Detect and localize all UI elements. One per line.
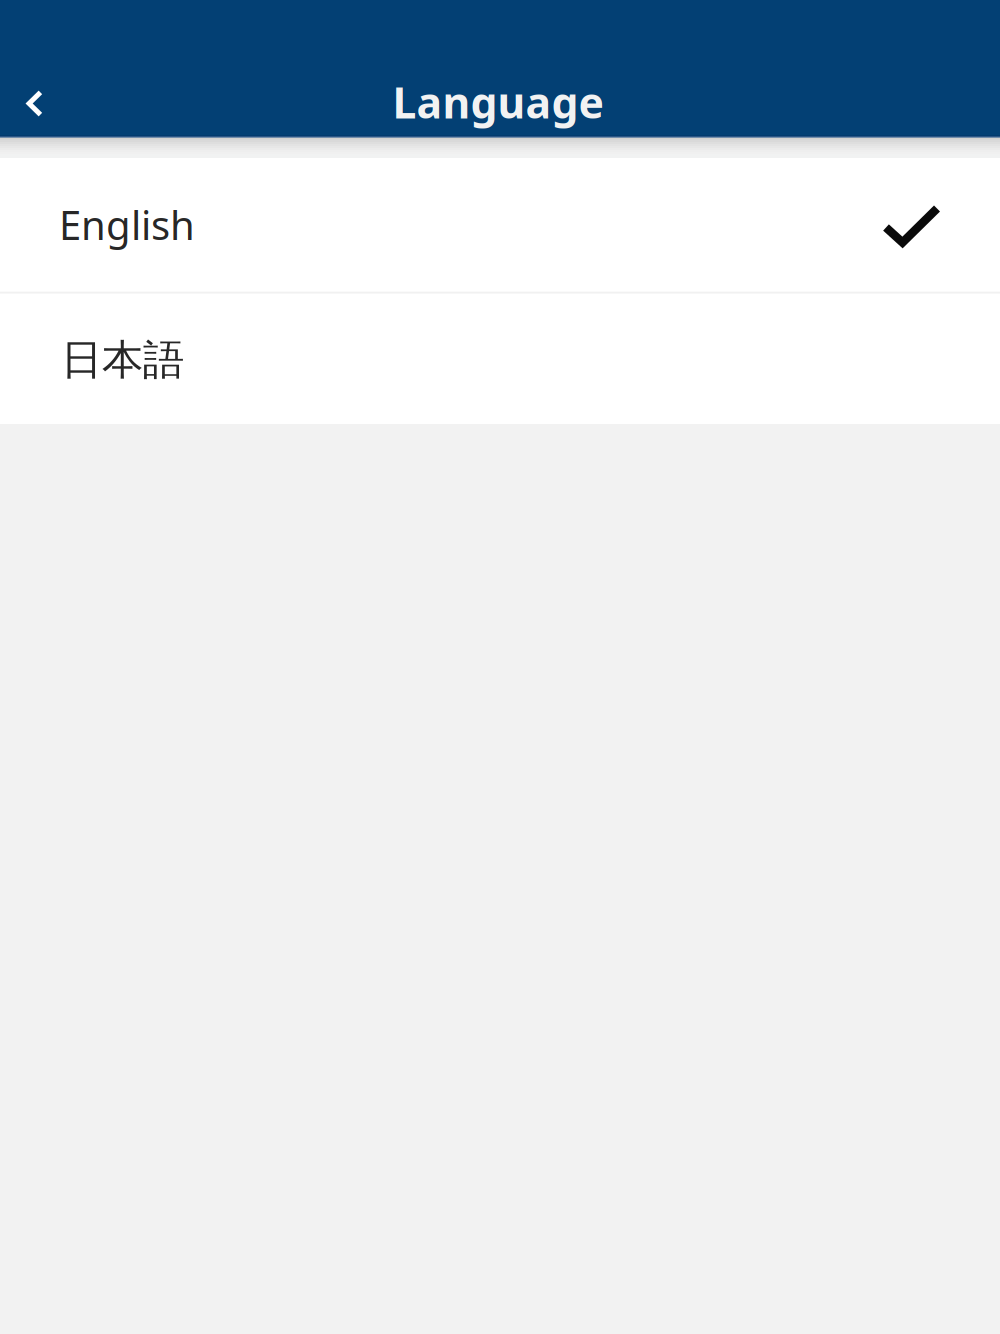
staticText: 日本語 <box>61 335 184 385</box>
button[interactable]: 日本語 <box>0 294 1000 424</box>
button[interactable]: Back <box>0 70 66 134</box>
button[interactable]: English <box>0 158 1000 291</box>
staticText: English <box>59 198 195 251</box>
staticText: Language <box>392 74 603 130</box>
